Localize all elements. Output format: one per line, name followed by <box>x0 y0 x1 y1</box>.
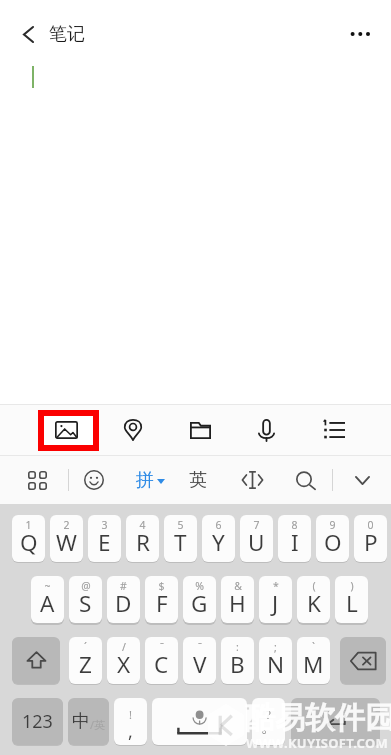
staticText: ˋ <box>312 640 315 654</box>
staticText: S <box>79 588 92 619</box>
staticText: M <box>303 649 324 680</box>
button[interactable]: Move cursor <box>230 458 274 502</box>
staticText: I <box>291 527 299 558</box>
button[interactable]: / <box>107 637 140 684</box>
staticText: 笔记 <box>49 23 85 46</box>
staticText: X <box>117 649 131 680</box>
staticText: 8 <box>291 518 298 532</box>
staticText: ( <box>312 579 316 593</box>
staticText: ˉ <box>198 640 202 654</box>
button[interactable]: % <box>183 576 216 623</box>
button[interactable]: 4 <box>126 515 159 562</box>
button[interactable]: More options <box>344 16 380 52</box>
button[interactable]: Numbers <box>12 698 63 745</box>
staticText: ˉ <box>160 640 164 654</box>
staticText: Z <box>79 649 92 680</box>
button[interactable]: @ <box>69 576 102 623</box>
staticText: 1 <box>25 518 32 532</box>
button[interactable]: & <box>221 576 254 623</box>
staticText: V <box>193 649 207 680</box>
staticText: ? <box>266 707 271 722</box>
staticText: 9 <box>329 518 336 532</box>
staticText: A <box>40 588 55 619</box>
button[interactable]: # <box>107 576 140 623</box>
staticText: W <box>56 527 77 558</box>
button[interactable]: 笔记 <box>49 14 85 54</box>
staticText: O <box>324 527 342 558</box>
staticText: $ <box>158 579 165 593</box>
staticText: U <box>248 527 265 558</box>
button[interactable]: 拼 <box>128 458 172 502</box>
staticText: P <box>364 527 378 558</box>
button[interactable]: ( <box>297 576 330 623</box>
button[interactable]: Enter <box>291 698 380 745</box>
staticText: 2 <box>63 518 70 532</box>
staticText: 。 <box>261 718 276 737</box>
button[interactable]: Location <box>109 406 157 454</box>
staticText: ˊ <box>84 640 87 654</box>
staticText: ; <box>274 640 277 654</box>
button[interactable]: ; <box>259 637 292 684</box>
button[interactable]: 7 <box>240 515 273 562</box>
button[interactable]: 9 <box>316 515 349 562</box>
staticText: Y <box>212 527 225 558</box>
staticText: Q <box>20 527 38 558</box>
staticText: F <box>156 588 168 619</box>
button[interactable]: Backspace <box>340 637 386 684</box>
staticText: 酷易软件园 <box>245 699 391 737</box>
staticText: WWW.KUYISOFT.COM <box>246 734 389 752</box>
staticText: % <box>195 579 204 593</box>
button[interactable]: 0 <box>354 515 387 562</box>
button[interactable]: : <box>221 637 254 684</box>
staticText: ! <box>129 707 132 722</box>
button[interactable]: Keyboard layout <box>15 458 59 502</box>
staticText: 中 <box>72 710 90 733</box>
button[interactable]: Checklist <box>310 406 358 454</box>
button[interactable]: 英 <box>176 458 220 502</box>
button[interactable]: 3 <box>88 515 121 562</box>
button[interactable]: ˊ <box>69 637 102 684</box>
button[interactable]: 1 <box>12 515 45 562</box>
button[interactable]: Voice input <box>242 406 290 454</box>
button[interactable]: Insert image <box>42 406 90 454</box>
button[interactable]: 8 <box>278 515 311 562</box>
button[interactable]: Back <box>10 16 46 52</box>
button[interactable]: Chinese English toggle <box>68 698 109 745</box>
staticText: 123 <box>22 709 53 734</box>
staticText: 3 <box>101 518 108 532</box>
staticText: & <box>234 579 242 593</box>
staticText: R <box>136 527 150 558</box>
button[interactable]: Emoji <box>72 458 116 502</box>
button[interactable]: ˋ <box>297 637 330 684</box>
button[interactable]: ~ <box>31 576 64 623</box>
staticText: J <box>272 588 279 619</box>
button[interactable]: * <box>259 576 292 623</box>
staticText: / <box>122 640 126 654</box>
staticText: # <box>120 579 127 593</box>
button[interactable]: Folder <box>176 406 224 454</box>
staticText: 6 <box>215 518 222 532</box>
button[interactable]: Space <box>152 698 247 745</box>
button[interactable]: Search <box>284 458 328 502</box>
button[interactable]: 2 <box>50 515 83 562</box>
button[interactable]: Shift <box>12 637 60 684</box>
staticText: 英 <box>189 469 207 492</box>
staticText: @ <box>81 579 91 593</box>
staticText: 4 <box>139 518 146 532</box>
staticText: H <box>229 588 246 619</box>
button[interactable]: 5 <box>164 515 197 562</box>
staticText: B <box>230 649 245 680</box>
button[interactable]: ) <box>335 576 368 623</box>
button[interactable]: $ <box>145 576 178 623</box>
button[interactable]: Period <box>252 698 285 745</box>
button[interactable]: Comma <box>114 698 147 745</box>
button[interactable]: 6 <box>202 515 235 562</box>
staticText: 7 <box>253 518 260 532</box>
button[interactable]: Hide keyboard <box>340 458 384 502</box>
button[interactable]: ˉ <box>145 637 178 684</box>
staticText: * <box>273 579 279 593</box>
button[interactable]: ˉ <box>183 637 216 684</box>
staticText: C <box>154 649 169 680</box>
staticText: D <box>115 588 132 619</box>
staticText: 拼 <box>136 469 154 492</box>
